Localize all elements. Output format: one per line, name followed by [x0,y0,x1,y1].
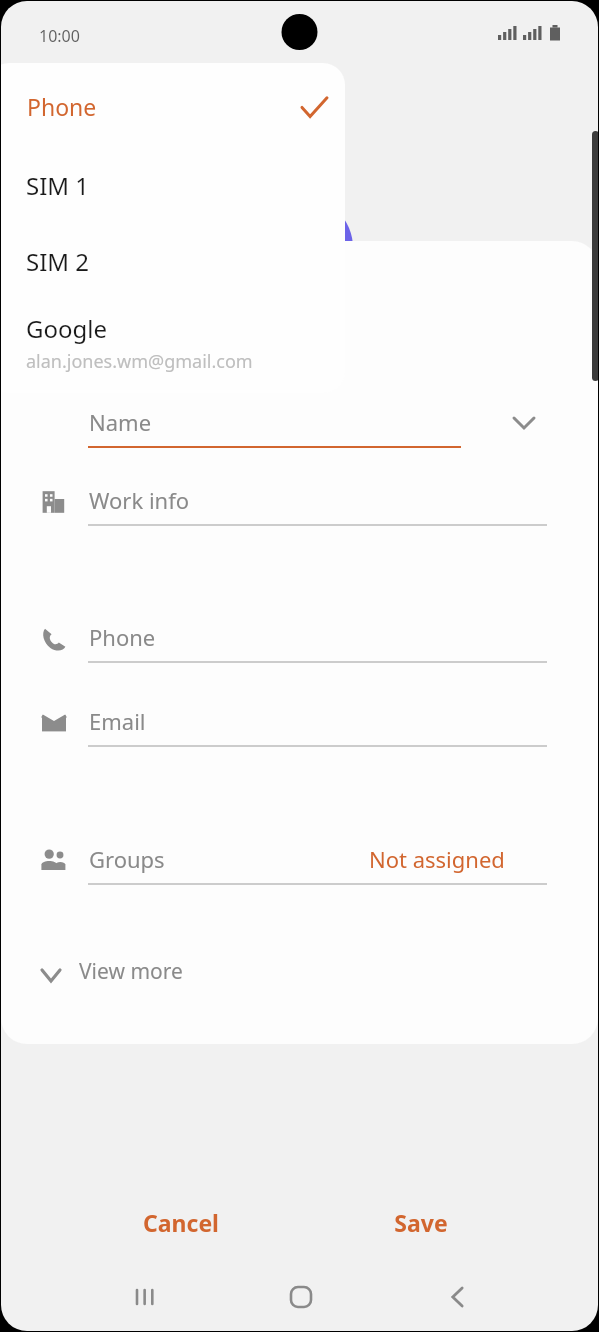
button[interactable]: Work info [1,473,598,535]
staticText: Phone [27,91,97,122]
button[interactable]: Phone [1,71,345,139]
staticText: Name [89,407,152,437]
staticText: alan.jones.wm@gmail.com [26,349,253,374]
staticText: 10:00 [39,25,80,47]
button[interactable]: SIM 1 [1,147,345,217]
button[interactable]: Cancel [101,1191,261,1253]
button[interactable]: Recent apps [109,1269,183,1325]
staticText: Groups [89,844,165,874]
staticText: Work info [89,485,190,515]
button[interactable]: Back [421,1269,495,1325]
button[interactable]: Google [1,300,345,385]
staticText: SIM 1 [26,169,90,202]
staticText: SIM 2 [26,245,90,278]
staticText: Not assigned [369,844,505,874]
button[interactable]: Groups [1,832,598,894]
button[interactable]: View more [1,941,598,1001]
button[interactable]: Email [1,694,598,756]
button[interactable]: Home [264,1269,338,1325]
button[interactable]: SIM 2 [1,223,345,293]
button[interactable]: Phone [1,610,598,672]
staticText: Cancel [143,1207,219,1238]
staticText: View more [79,957,183,986]
staticText: Save [394,1207,448,1238]
other: Expand name [510,407,538,435]
button[interactable]: Save [341,1191,501,1253]
staticText: Google [26,312,107,345]
staticText: Email [89,706,146,736]
staticText: Phone [89,622,156,652]
button[interactable]: Name [1,395,598,457]
